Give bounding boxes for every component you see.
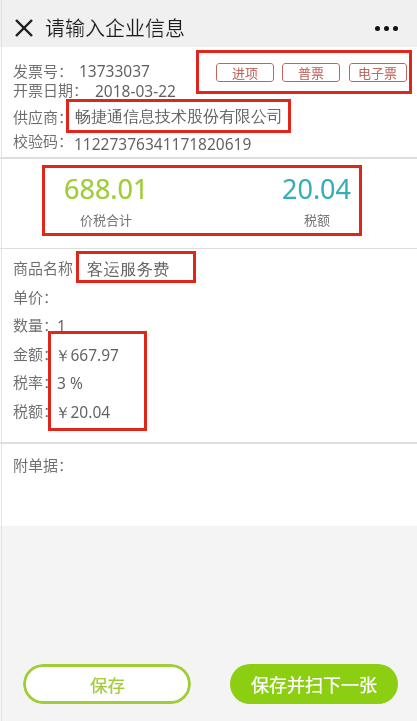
staticText: 税率： [13, 371, 59, 393]
staticText: 3 % [57, 372, 83, 393]
staticText: 电子票 [358, 63, 398, 82]
button[interactable]: 进项 [216, 63, 274, 82]
button[interactable]: More options [368, 10, 404, 46]
staticText: 单价： [13, 286, 59, 308]
staticText: 688.01 [64, 170, 149, 207]
button[interactable]: 保存并扫下一张 [230, 664, 398, 704]
button[interactable]: 保存 [23, 664, 191, 704]
staticText: 1 [57, 315, 66, 336]
button[interactable]: Close [9, 13, 39, 43]
staticText: 11227376341171820619 [74, 133, 252, 154]
staticText: 价税合计 [80, 210, 133, 229]
staticText: 商品名称 [13, 257, 74, 279]
staticText: 保存并扫下一张 [251, 671, 377, 697]
staticText: 税额 [304, 210, 331, 229]
staticText: 数量： [13, 314, 59, 336]
staticText: 开票日期： [13, 79, 89, 101]
staticText: 客运服务费 [87, 259, 170, 280]
staticText: ￥667.97 [55, 344, 119, 365]
staticText: 校验码： [13, 130, 74, 152]
staticText: 13733037 [79, 60, 150, 81]
button[interactable]: 普票 [282, 63, 340, 82]
staticText: 请输入企业信息 [45, 13, 185, 42]
staticText: 畅捷通信息技术股份有限公司 [75, 107, 283, 127]
staticText: ￥20.04 [55, 401, 111, 422]
staticText: 供应商： [13, 106, 74, 128]
staticText: 发票号： [13, 60, 74, 82]
staticText: 2018-03-22 [95, 80, 176, 101]
staticText: 附单据： [13, 454, 74, 476]
button[interactable]: 电子票 [349, 63, 407, 82]
staticText: 普票 [298, 63, 325, 82]
staticText: 金额： [13, 343, 59, 365]
staticText: 保存 [90, 672, 125, 697]
staticText: 进项 [232, 63, 259, 82]
staticText: 税额： [13, 400, 59, 422]
staticText: 20.04 [282, 170, 352, 207]
